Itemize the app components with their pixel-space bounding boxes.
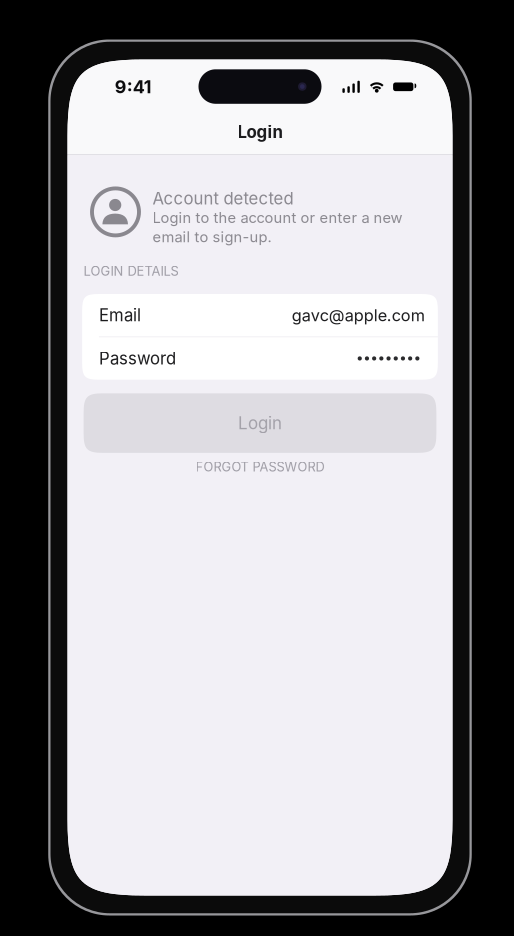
staticText: Account detected	[152, 188, 293, 209]
staticText: FORGOT PASSWORD	[195, 459, 324, 475]
button[interactable]: FORGOT PASSWORD	[67, 456, 452, 478]
staticText: 9:41	[115, 76, 152, 98]
staticText: LOGIN DETAILS	[83, 263, 178, 279]
staticText: Password	[99, 348, 176, 369]
staticText: gavc@apple.com	[292, 305, 425, 325]
button[interactable]: Login	[84, 393, 436, 453]
staticText: Login	[237, 122, 282, 142]
staticText: Login	[238, 413, 282, 433]
staticText: Login to the account or enter a new	[152, 209, 402, 226]
staticText: Email	[99, 305, 141, 325]
staticText: email to sign-up.	[152, 228, 271, 246]
